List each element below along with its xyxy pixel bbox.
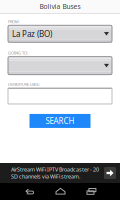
staticText: SD channels via WiFi stream. [11,173,80,180]
button[interactable]: Home [45,183,76,200]
button[interactable]: Recents [76,183,107,200]
staticText: DEPARTURE DATE: [8,82,40,87]
staticText: FROM: [8,19,20,24]
staticText: GOING TO: [8,50,28,56]
button[interactable]: Back [14,183,45,200]
button[interactable]: Open advertisement [104,167,116,179]
staticText: La Paz (BO) [12,28,52,39]
button[interactable]: La Paz (BO) [8,25,112,42]
staticText: AirStream WiFi IPTV Broadcaster - 20 [11,166,99,173]
button[interactable]: SEARCH [29,114,90,128]
button[interactable] [8,88,112,104]
staticText: SEARCH [45,116,74,126]
button[interactable] [8,57,112,75]
staticText: Bolivia Buses [39,2,80,11]
